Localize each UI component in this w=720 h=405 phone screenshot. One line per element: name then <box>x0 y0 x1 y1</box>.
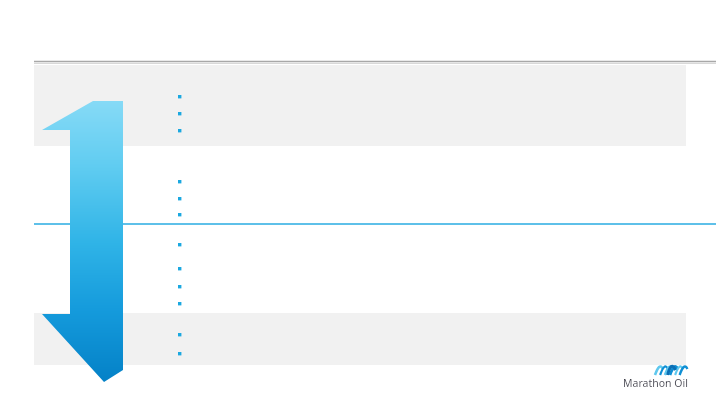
button[interactable]: Marathon Oil slide, section one <box>0 0 720 405</box>
